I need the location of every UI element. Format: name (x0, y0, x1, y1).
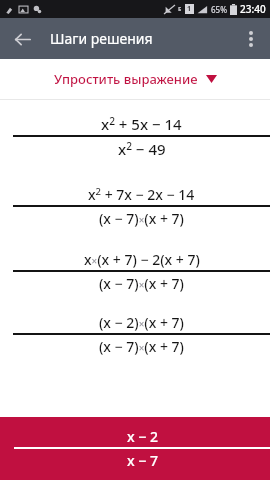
staticText: E (178, 5, 182, 13)
staticText: x − 2 (127, 427, 158, 446)
staticText: x2 + 7x − 2x − 14 (88, 185, 195, 204)
staticText: 65% (211, 4, 227, 15)
staticText: (x − 2)×(x + 7) (99, 313, 184, 332)
staticText: (x − 7)×(x + 7) (99, 337, 184, 356)
staticText: x − 7 (127, 451, 158, 470)
button[interactable]: x − 2 (0, 417, 270, 480)
staticText: Упростить выражение (54, 70, 198, 88)
button[interactable]: Упростить выражение (44, 64, 227, 94)
staticText: x2 − 49 (118, 139, 166, 159)
button[interactable]: Back (6, 23, 38, 55)
staticText: x×(x + 7) − 2(x + 7) (84, 250, 200, 269)
button[interactable]: More options (234, 22, 268, 56)
staticText: 23:40 (240, 2, 266, 16)
staticText: (x − 7)×(x + 7) (99, 209, 184, 228)
staticText: (x − 7)×(x + 7) (99, 274, 184, 293)
staticText: 1 (187, 4, 192, 14)
staticText: x2 + 5x − 14 (101, 114, 182, 134)
staticText: Шаги решения (50, 29, 153, 48)
